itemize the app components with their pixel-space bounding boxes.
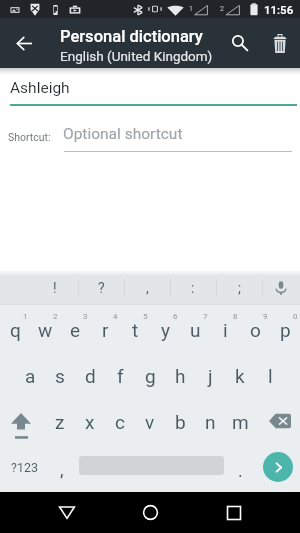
staticText: n [205, 411, 216, 433]
staticText: c [115, 411, 125, 433]
button[interactable]: 2 [30, 307, 60, 353]
button[interactable]: , [124, 271, 170, 304]
staticText: w [38, 319, 53, 341]
button[interactable]: Navigate up [0, 19, 48, 67]
button[interactable]: d [75, 353, 105, 399]
button[interactable]: l [255, 353, 285, 399]
staticText: 1 [189, 5, 193, 13]
staticText: Optional shortcut [63, 125, 183, 143]
staticText: Ashleigh [10, 79, 70, 97]
staticText: Personal dictionary [60, 27, 203, 46]
button[interactable]: x [75, 399, 105, 445]
staticText: t [132, 319, 139, 341]
staticText: 6 [173, 312, 178, 321]
button[interactable]: k [225, 353, 255, 399]
button[interactable]: Shift [0, 399, 45, 445]
staticText: a [25, 365, 36, 387]
button[interactable]: z [45, 399, 75, 445]
staticText: g [145, 365, 156, 387]
button[interactable]: Delete [260, 23, 300, 63]
button[interactable]: j [195, 353, 225, 399]
staticText: e [70, 319, 81, 341]
staticText: r [102, 319, 109, 341]
staticText: . [238, 460, 243, 481]
button[interactable]: Voice input [262, 271, 300, 304]
button[interactable]: 7 [180, 307, 210, 353]
staticText: 2 [220, 5, 224, 13]
button[interactable]: n [195, 399, 225, 445]
staticText: s [55, 365, 65, 387]
button[interactable]: 3 [60, 307, 90, 353]
button[interactable]: b [165, 399, 195, 445]
staticText: 11:56 [264, 3, 294, 16]
button[interactable]: m [225, 399, 255, 445]
staticText: English (United Kingdom) [60, 48, 213, 64]
button[interactable]: Back [46, 492, 87, 533]
staticText: u [190, 319, 201, 341]
button[interactable]: 6 [150, 307, 180, 353]
staticText: ; [238, 280, 241, 296]
staticText: 1 [23, 312, 28, 321]
staticText: v [145, 411, 155, 433]
staticText: j [208, 365, 213, 387]
button[interactable]: g [135, 353, 165, 399]
staticText: l [268, 365, 273, 387]
button[interactable]: Home [130, 492, 171, 533]
button[interactable]: Recent apps [213, 492, 254, 533]
button[interactable]: Search [220, 23, 260, 63]
staticText: ? [98, 280, 105, 296]
button[interactable]: . [227, 448, 254, 493]
button[interactable]: Backspace [255, 399, 300, 445]
staticText: b [175, 411, 186, 433]
button[interactable]: 0 [270, 307, 300, 353]
staticText: 2 [53, 312, 58, 321]
button[interactable]: f [105, 353, 135, 399]
staticText: 3 [83, 312, 88, 321]
staticText: ! [53, 280, 57, 296]
staticText: o [250, 319, 261, 341]
staticText: i [223, 319, 228, 341]
button[interactable]: ?123 [0, 445, 48, 490]
button[interactable]: ! [32, 271, 78, 304]
staticText: 5 [143, 312, 148, 321]
staticText: 8 [233, 312, 238, 321]
button[interactable]: v [135, 399, 165, 445]
staticText: z [55, 411, 65, 433]
button[interactable]: h [165, 353, 195, 399]
button[interactable]: a [15, 353, 45, 399]
staticText: h [175, 365, 186, 387]
button[interactable]: ? [78, 271, 124, 304]
button[interactable]: 9 [240, 307, 270, 353]
staticText: f [117, 365, 124, 387]
button[interactable]: 5 [120, 307, 150, 353]
staticText: 9 [263, 312, 268, 321]
staticText: x [85, 411, 95, 433]
staticText: : [191, 280, 195, 296]
button[interactable]: ; [216, 271, 262, 304]
staticText: k [235, 365, 245, 387]
button[interactable]: c [105, 399, 135, 445]
staticText: 0 [293, 312, 298, 321]
button[interactable]: 4 [90, 307, 120, 353]
staticText: , [60, 459, 64, 480]
staticText: ?123 [11, 460, 38, 475]
staticText: q [10, 319, 21, 341]
button[interactable]: Enter [263, 452, 293, 482]
staticText: 7 [203, 312, 208, 321]
staticText: , [146, 280, 149, 296]
staticText: Shortcut: [8, 131, 51, 143]
button[interactable]: , [48, 447, 75, 492]
staticText: y [161, 319, 170, 341]
button[interactable]: 8 [210, 307, 240, 353]
button[interactable]: s [45, 353, 75, 399]
staticText: d [85, 365, 96, 387]
button[interactable]: : [170, 271, 216, 304]
staticText: p [280, 319, 291, 341]
staticText: 4 [113, 312, 118, 321]
staticText: m [232, 411, 249, 433]
button[interactable]: 1 [0, 307, 30, 353]
